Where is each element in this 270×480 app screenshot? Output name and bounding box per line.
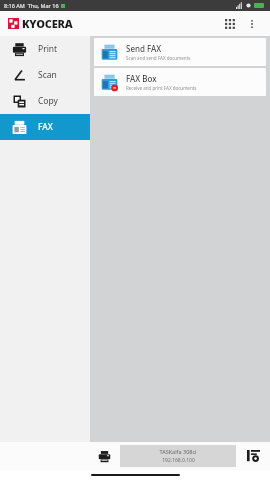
staticText: TASKalfa 308ci — [159, 448, 197, 455]
staticText: Scan and send FAX documents — [126, 55, 191, 61]
staticText: 192.168.0.100 — [162, 457, 195, 464]
staticText: 8:16 AM Thu, Mar 16 — [4, 2, 59, 9]
staticText: Scan — [38, 69, 57, 81]
button[interactable]: Print — [0, 36, 90, 62]
button[interactable]: Apps grid — [220, 14, 240, 34]
staticText: Receive and print FAX documents — [126, 85, 197, 91]
staticText: Send FAX — [126, 43, 162, 54]
button[interactable]: FAX Box — [94, 68, 266, 96]
button[interactable]: Printer — [92, 444, 116, 468]
button[interactable]: TASKalfa 308ci — [120, 445, 236, 467]
staticText: Print — [38, 43, 58, 55]
staticText: FAX — [38, 121, 53, 133]
button[interactable]: Copy — [0, 88, 90, 114]
button[interactable]: Scan — [0, 62, 90, 88]
button[interactable]: FAX — [0, 114, 90, 140]
staticText: KYOCERA — [22, 16, 73, 31]
staticText: Copy — [38, 95, 58, 107]
button[interactable]: Send FAX — [94, 38, 266, 66]
button[interactable]: More options — [242, 14, 262, 34]
staticText: FAX Box — [126, 73, 157, 84]
button[interactable]: Printer settings — [240, 443, 266, 469]
